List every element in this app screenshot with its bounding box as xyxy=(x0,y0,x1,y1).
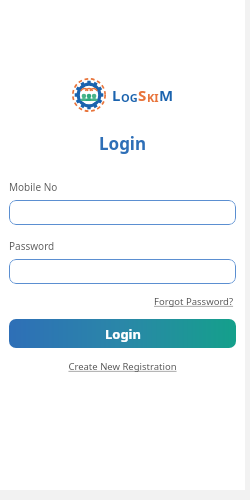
staticText: Login xyxy=(105,325,141,343)
staticText: L xyxy=(112,85,121,105)
button[interactable]: Forgot Password? xyxy=(152,293,236,310)
staticText: S xyxy=(138,85,147,105)
staticText: Password xyxy=(9,239,55,253)
other: LogSkiM logo xyxy=(72,78,106,112)
staticText: KI xyxy=(147,90,159,105)
button[interactable] xyxy=(9,259,236,284)
staticText: OG xyxy=(121,90,138,105)
staticText: Login xyxy=(99,132,147,155)
staticText: M xyxy=(159,85,174,105)
button[interactable]: Login xyxy=(9,319,236,348)
staticText: Mobile No xyxy=(9,180,58,194)
staticText: Create New Registration xyxy=(68,360,177,373)
button[interactable] xyxy=(9,200,236,225)
button[interactable]: Create New Registration xyxy=(64,358,181,375)
staticText: Forgot Password? xyxy=(154,295,234,308)
